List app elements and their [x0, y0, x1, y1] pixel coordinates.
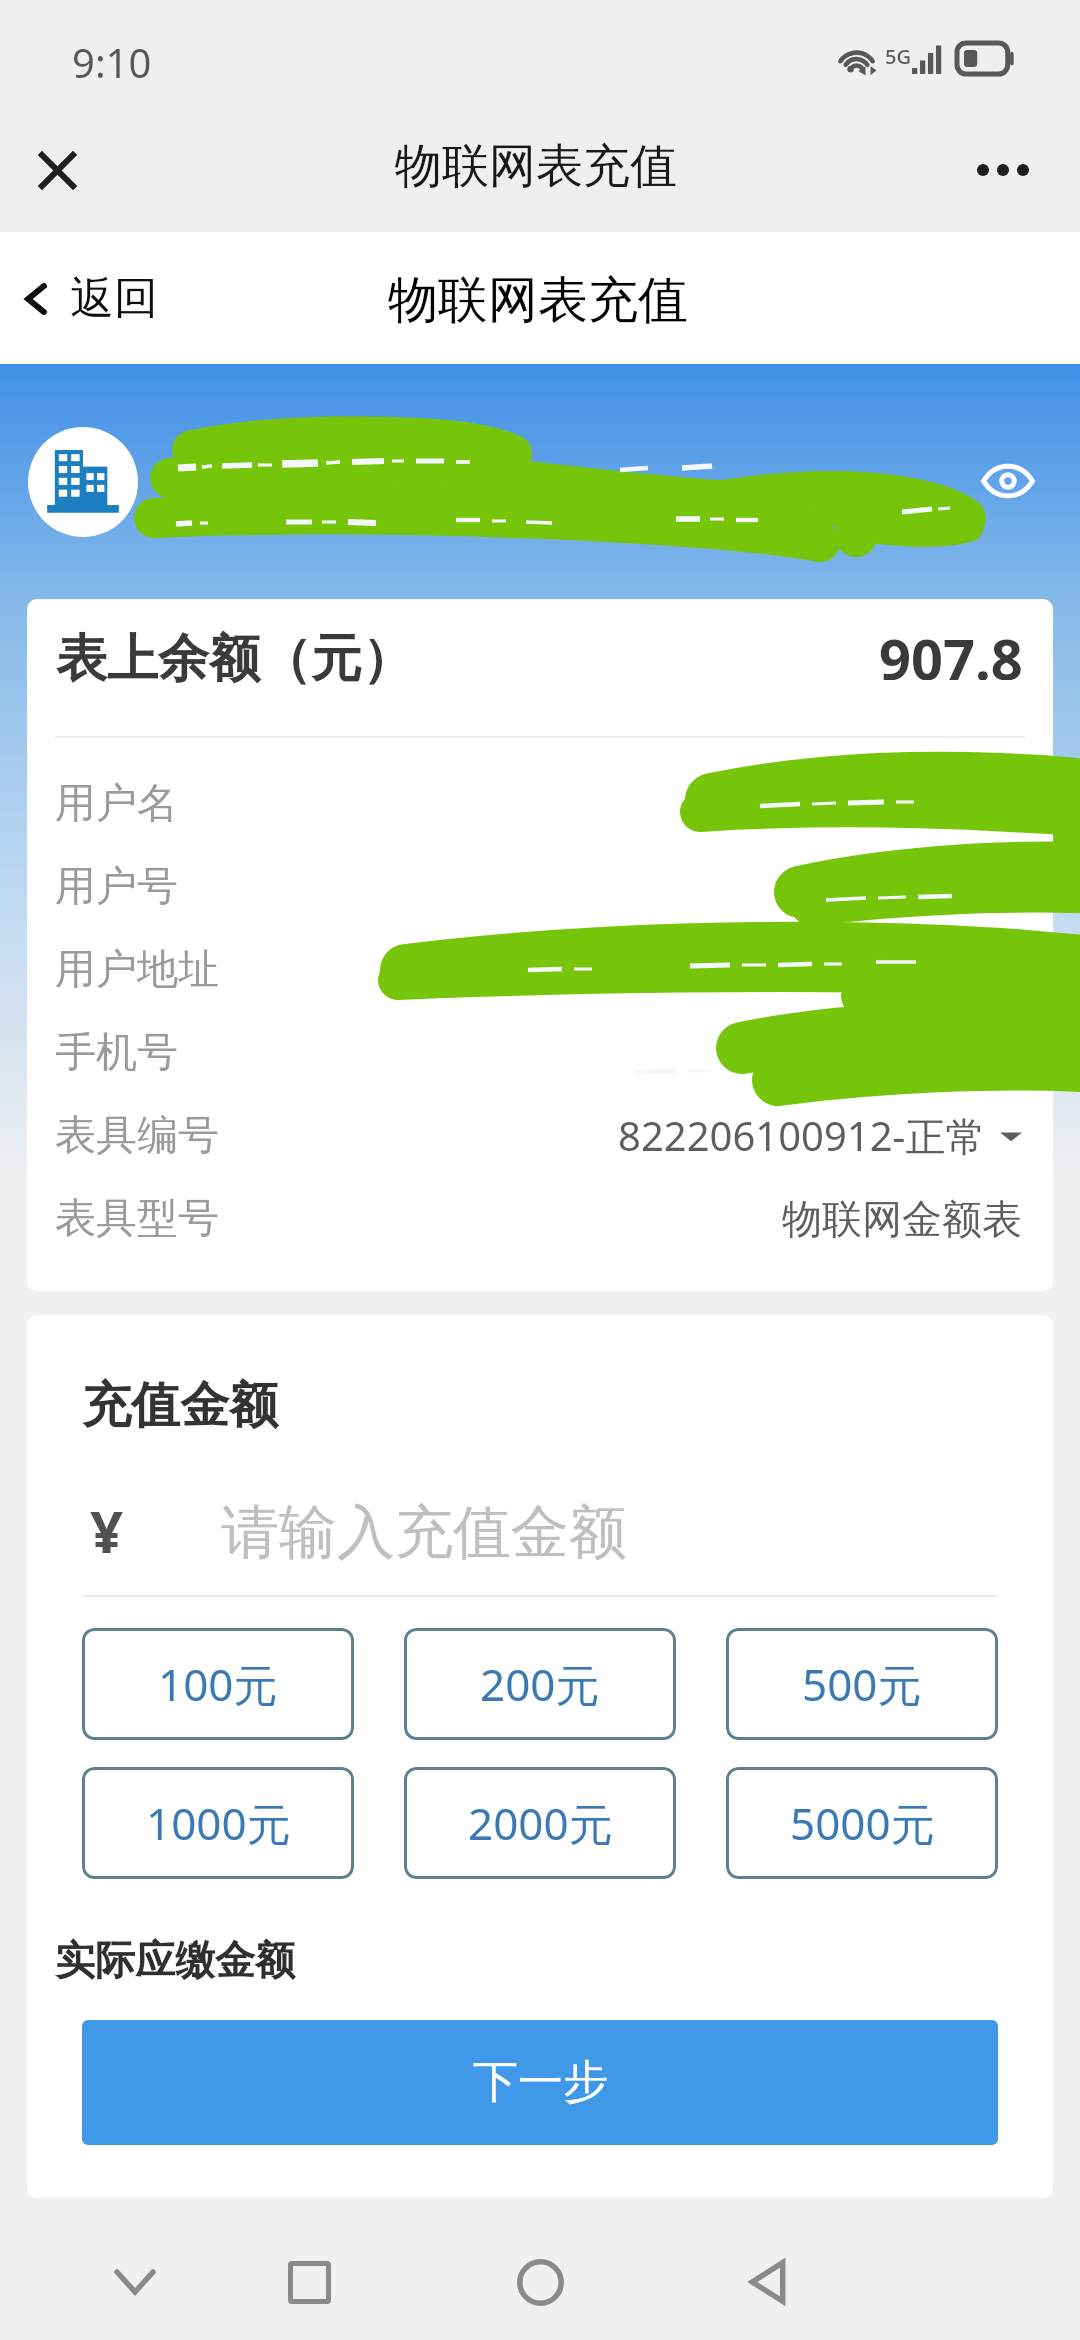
staticText: 5000元 [790, 1793, 935, 1853]
staticText: 100元 [158, 1654, 278, 1714]
staticText: 物联网金额表 [782, 1194, 1022, 1244]
staticText: 用户号 [55, 861, 178, 913]
staticText: 返回 [70, 271, 158, 326]
staticText: 用户地址 [55, 944, 219, 996]
staticText: 2000元 [468, 1793, 613, 1853]
staticText: 用户名 [55, 778, 178, 830]
button[interactable]: 表具编号 [27, 1094, 1053, 1177]
button[interactable]: 返回 [8, 261, 168, 336]
staticText: 下一步 [473, 2054, 608, 2111]
button[interactable]: Back [718, 2220, 818, 2340]
staticText: 822206100912-正常 [618, 1108, 986, 1163]
staticText: 请输入充值金额 [221, 1496, 627, 1569]
staticText: 实际应缴金额 [55, 1935, 295, 1985]
button[interactable]: Recents [259, 2220, 359, 2340]
staticText: 9:10 [72, 35, 152, 89]
button[interactable]: Hide keyboard [85, 2220, 185, 2340]
staticText: 200元 [480, 1654, 600, 1714]
staticText: ¥ [90, 1491, 124, 1570]
button[interactable]: 下一步 [82, 2020, 998, 2145]
staticText: 表上余额（元） [56, 627, 413, 687]
button[interactable]: More options [969, 150, 1037, 190]
staticText: 物联网表充值 [395, 137, 677, 196]
button[interactable]: 5000元 [726, 1767, 998, 1879]
staticText: 1000元 [146, 1793, 291, 1853]
button[interactable]: Show details [980, 453, 1036, 509]
button[interactable]: Close [21, 134, 93, 206]
staticText: 手机号 [55, 1027, 178, 1079]
button[interactable]: 1000元 [82, 1767, 354, 1879]
button[interactable]: 100元 [82, 1628, 354, 1740]
staticText: 物联网表充值 [388, 269, 688, 332]
button[interactable]: 200元 [404, 1628, 676, 1740]
button[interactable]: 2000元 [404, 1767, 676, 1879]
button[interactable]: Home [490, 2220, 590, 2340]
staticText: 5G [885, 43, 911, 70]
staticText: 充值金额 [82, 1375, 278, 1437]
button[interactable]: 500元 [726, 1628, 998, 1740]
staticText: 表具型号 [55, 1193, 219, 1245]
staticText: 表具编号 [55, 1110, 219, 1162]
staticText: 500元 [802, 1654, 922, 1714]
staticText: 907.8 [879, 620, 1023, 680]
